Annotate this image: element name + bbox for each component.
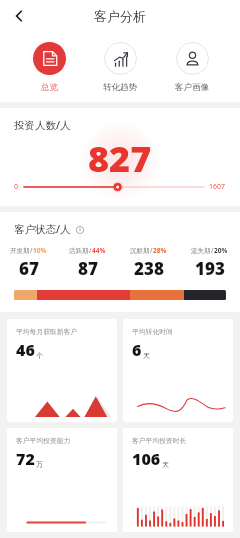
button[interactable]: 活跃期: [57, 246, 118, 280]
staticText: 827: [88, 134, 152, 178]
staticText: 客户分析: [94, 8, 146, 24]
staticText: /: [89, 246, 92, 255]
staticText: 沉默期: [130, 247, 150, 255]
staticText: 1607: [209, 182, 226, 192]
staticText: 238: [134, 257, 164, 280]
staticText: 46: [16, 339, 35, 361]
staticText: 44%: [92, 246, 106, 255]
staticText: 投资人数/人: [14, 118, 71, 132]
staticText: 天: [162, 460, 169, 469]
staticText: 开发期: [10, 247, 30, 255]
staticText: /: [211, 246, 214, 255]
staticText: 28%: [153, 246, 167, 255]
button[interactable]: Investor count slider: [24, 180, 204, 194]
button[interactable]: 开发期: [0, 246, 57, 280]
staticText: 活跃期: [69, 247, 89, 255]
button[interactable]: 平均转化时间: [123, 319, 233, 422]
staticText: /: [30, 246, 33, 255]
staticText: 客户状态/人: [14, 222, 71, 236]
button[interactable]: Info: [74, 224, 85, 235]
staticText: 193: [195, 257, 225, 280]
button[interactable]: 客户平均投资时长: [123, 428, 233, 532]
staticText: 个: [36, 351, 43, 360]
button[interactable]: 沉默期: [118, 246, 179, 280]
staticText: 万: [36, 460, 43, 469]
button[interactable]: 客户画像: [159, 38, 225, 93]
staticText: 67: [19, 257, 39, 280]
staticText: 106: [132, 448, 161, 470]
button[interactable]: 平均每月获取新客户: [7, 319, 117, 422]
staticText: 10%: [33, 246, 47, 255]
staticText: 0: [14, 182, 19, 192]
staticText: 流失期: [191, 247, 211, 255]
button[interactable]: Back: [6, 3, 32, 29]
staticText: 20%: [214, 246, 228, 255]
staticText: 87: [78, 257, 98, 280]
button[interactable]: 流失期: [179, 246, 240, 280]
button[interactable]: 客户平均投资能力: [7, 428, 117, 532]
staticText: 平均转化时间: [132, 327, 173, 336]
staticText: 客户画像: [175, 82, 209, 93]
button[interactable]: 转化趋势: [87, 38, 153, 93]
staticText: 客户平均投资时长: [132, 436, 187, 445]
staticText: 平均每月获取新客户: [16, 327, 78, 336]
staticText: /: [150, 246, 153, 255]
staticText: 客户平均投资能力: [16, 436, 71, 445]
staticText: 转化趋势: [103, 82, 137, 93]
button[interactable]: 总览: [16, 38, 82, 93]
staticText: 6: [132, 339, 142, 361]
staticText: 总览: [41, 82, 58, 93]
staticText: 72: [16, 448, 35, 470]
staticText: 天: [143, 351, 150, 360]
